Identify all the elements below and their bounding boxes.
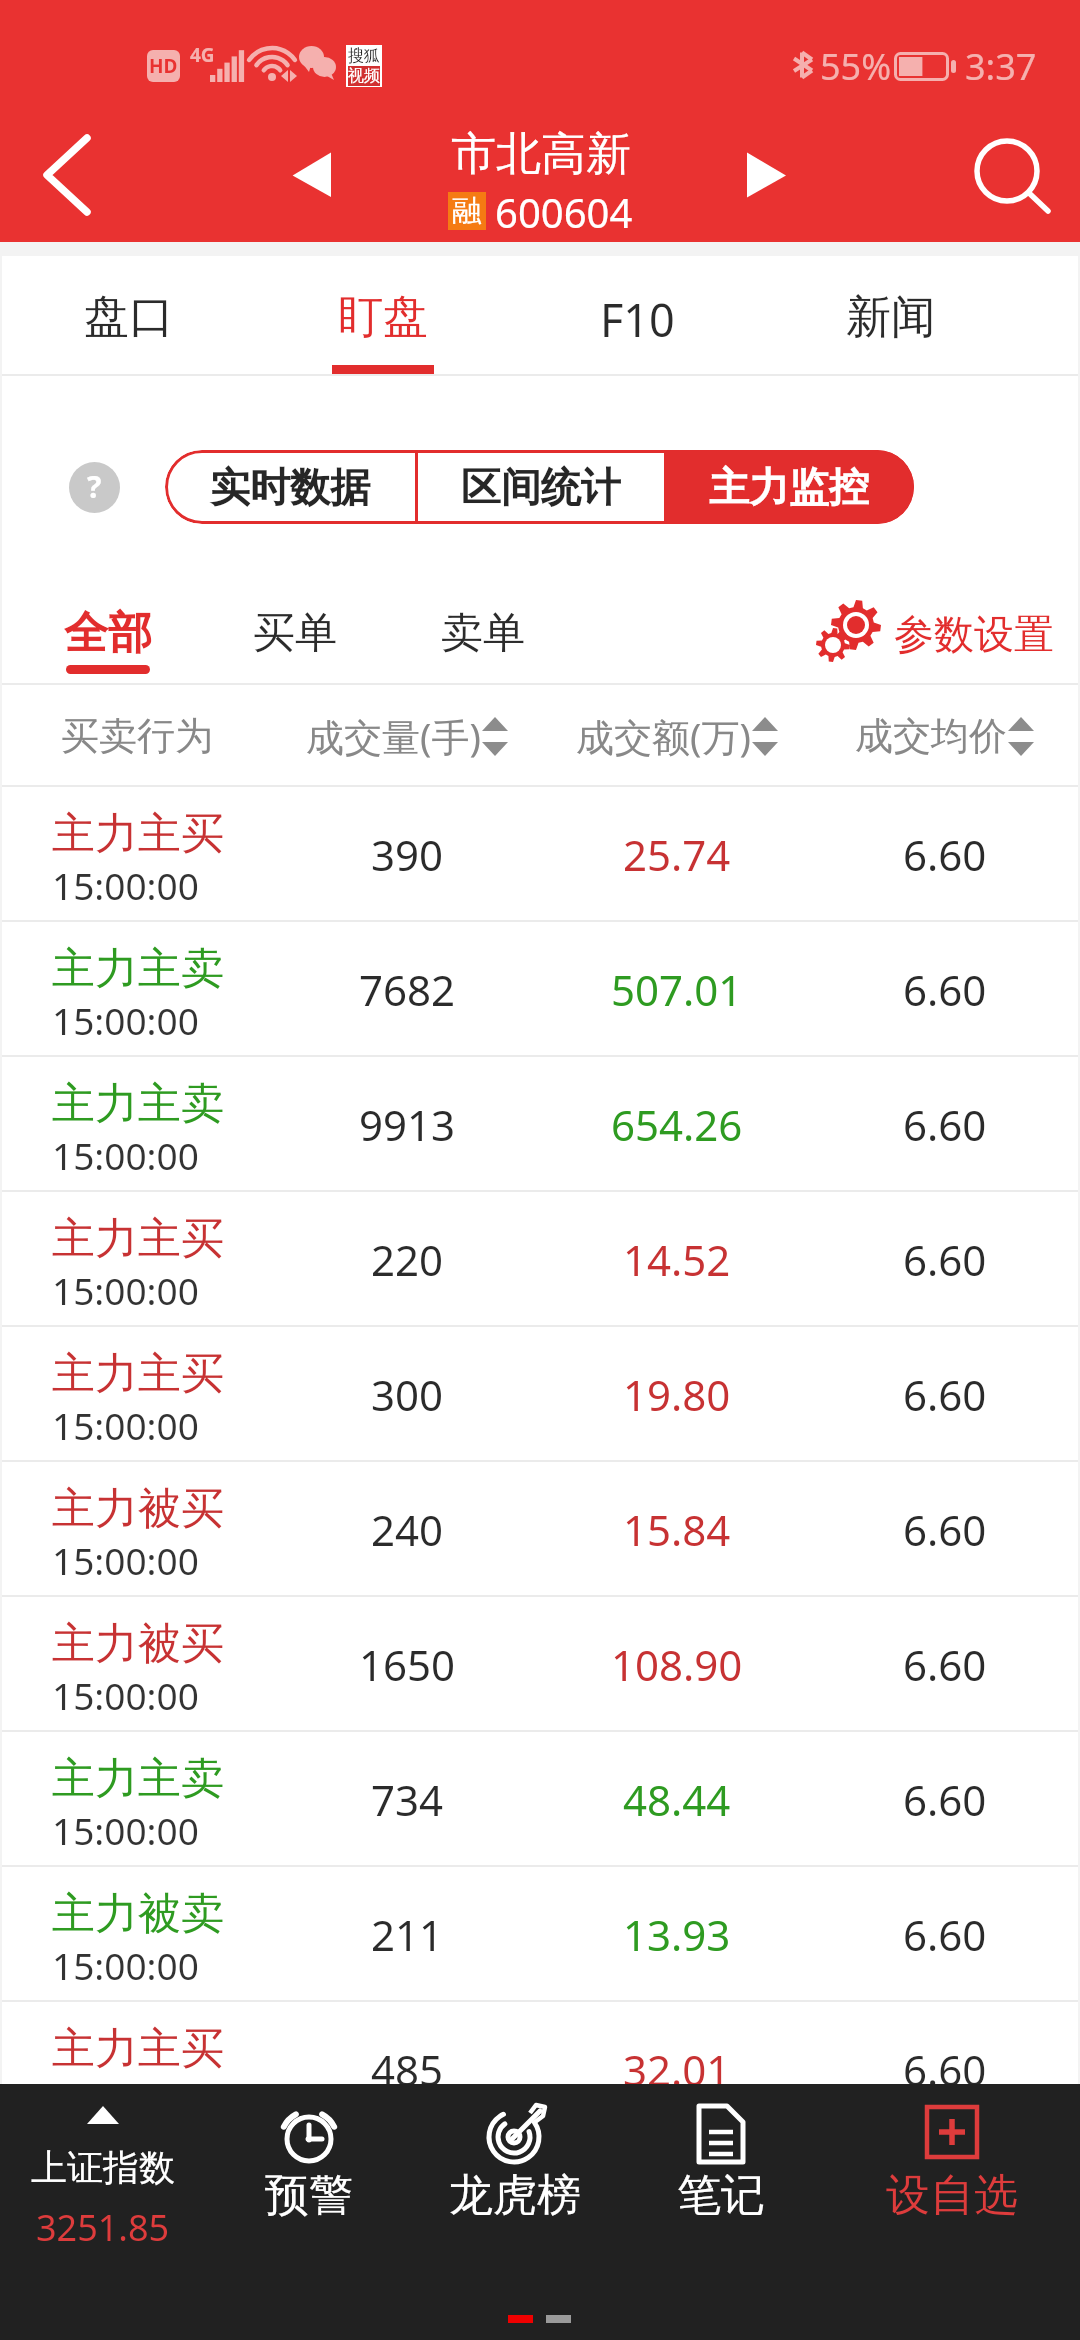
staticText: 25.74 <box>623 826 731 883</box>
button[interactable]: 全部 <box>40 580 176 684</box>
button[interactable]: 主力被买 <box>2 1462 1078 1597</box>
staticText: 主力主买 <box>52 1347 224 1401</box>
staticText: 390 <box>371 826 444 883</box>
staticText: 龙虎榜 <box>449 2168 581 2223</box>
staticText: 主力主买 <box>52 1212 224 1266</box>
button[interactable]: 上证指数 <box>0 2084 206 2244</box>
staticText: 买单 <box>253 607 337 660</box>
button[interactable]: Rankings <box>412 2084 618 2244</box>
staticText: 15:00:00 <box>52 860 199 910</box>
staticText: 6.60 <box>903 1636 987 1693</box>
button[interactable]: 成交均价 <box>812 685 1078 787</box>
staticText: 32.01 <box>623 2041 731 2098</box>
button[interactable]: Alerts <box>206 2084 412 2244</box>
staticText: HD <box>149 53 178 79</box>
button[interactable]: 主力主买 <box>2 2002 1078 2137</box>
staticText: 区间统计 <box>461 462 621 512</box>
button[interactable]: 卖单 <box>418 580 548 684</box>
staticText: 211 <box>371 1906 444 1963</box>
staticText: 视频 <box>348 66 380 86</box>
staticText: 485 <box>371 2041 444 2098</box>
button[interactable]: F10 <box>510 256 764 376</box>
staticText: 主力主卖 <box>52 942 224 996</box>
button[interactable]: 主力监控 <box>664 450 914 524</box>
staticText: 成交均价 <box>855 712 1007 760</box>
staticText: 15:00:00 <box>52 1400 199 1450</box>
staticText: 主力被买 <box>52 1482 224 1536</box>
button[interactable]: Next stock <box>727 142 807 208</box>
staticText: 108.90 <box>611 1636 743 1693</box>
button[interactable]: 盯盘 <box>256 256 510 376</box>
button[interactable]: 设自选 <box>824 2084 1080 2244</box>
staticText: 预警 <box>265 2168 353 2223</box>
button[interactable]: 实时数据 <box>165 450 415 524</box>
button[interactable]: Help <box>69 462 120 513</box>
button[interactable]: 主力主买 <box>2 1192 1078 1327</box>
button[interactable]: 成交量(手) <box>272 685 542 787</box>
staticText: 主力被卖 <box>52 1887 224 1941</box>
staticText: 15:00:00 <box>52 2075 199 2125</box>
staticText: 6.60 <box>903 2041 987 2098</box>
button[interactable]: 主力主卖 <box>2 1057 1078 1192</box>
staticText: 主力监控 <box>709 462 869 512</box>
button[interactable]: 买单 <box>230 580 360 684</box>
staticText: 参数设置 <box>894 609 1054 659</box>
button[interactable]: 主力主买 <box>2 1327 1078 1462</box>
button[interactable]: Previous stock <box>272 142 352 208</box>
staticText: 搜狐 <box>348 46 380 66</box>
staticText: 主力被买 <box>52 1617 224 1671</box>
staticText: 15:00:00 <box>52 1535 199 1585</box>
staticText: 6.60 <box>903 961 987 1018</box>
staticText: 14.52 <box>623 1231 731 1288</box>
staticText: 融 <box>452 192 482 230</box>
staticText: 15.84 <box>623 1501 731 1558</box>
staticText: 买卖行为 <box>61 712 213 760</box>
staticText: 6.60 <box>903 1501 987 1558</box>
staticText: 6.60 <box>903 826 987 883</box>
button[interactable]: 主力被卖 <box>2 1867 1078 2002</box>
button[interactable]: 主力主卖 <box>2 1732 1078 1867</box>
staticText: 15:00:00 <box>52 1805 199 1855</box>
button[interactable]: 主力主买 <box>2 787 1078 922</box>
button[interactable]: 主力主卖 <box>2 922 1078 1057</box>
button[interactable]: Notes <box>618 2084 824 2244</box>
staticText: 734 <box>371 1771 444 1828</box>
staticText: 实时数据 <box>210 462 370 512</box>
staticText: 主力主买 <box>52 807 224 861</box>
staticText: 15:00:00 <box>52 1130 199 1180</box>
staticText: 220 <box>371 1231 444 1288</box>
staticText: 笔记 <box>677 2168 765 2223</box>
button[interactable]: 成交额(万) <box>542 685 812 787</box>
staticText: 654.26 <box>611 1096 743 1153</box>
button[interactable]: 主力被买 <box>2 1597 1078 1732</box>
staticText: 主力主卖 <box>52 1752 224 1806</box>
staticText: 55% <box>820 42 892 91</box>
button[interactable]: Search <box>955 120 1065 230</box>
button[interactable]: 新闻 <box>764 256 1018 376</box>
staticText: 6.60 <box>903 1906 987 1963</box>
staticText: 15:00:00 <box>52 1265 199 1315</box>
staticText: 主力主卖 <box>52 1077 224 1131</box>
staticText: 6.60 <box>903 1771 987 1828</box>
staticText: 市北高新 <box>451 126 631 183</box>
staticText: 19.80 <box>623 1366 731 1423</box>
button[interactable]: 盘口 <box>2 256 256 376</box>
staticText: 6.60 <box>903 1366 987 1423</box>
staticText: 9913 <box>359 1096 456 1153</box>
staticText: 3:37 <box>965 42 1037 91</box>
button[interactable]: 参数设置 <box>816 592 1054 672</box>
staticText: F10 <box>600 289 675 350</box>
button[interactable]: 区间统计 <box>418 450 664 524</box>
staticText: 4G <box>190 42 215 68</box>
staticText: 设自选 <box>886 2168 1018 2223</box>
staticText: 6.60 <box>903 1231 987 1288</box>
staticText: 卖单 <box>441 607 525 660</box>
staticText: 盯盘 <box>338 289 428 346</box>
staticText: 全部 <box>64 606 152 661</box>
staticText: 盘口 <box>84 289 174 346</box>
button[interactable]: Back <box>12 130 112 220</box>
staticText: 新闻 <box>846 289 936 346</box>
staticText: 300 <box>371 1366 444 1423</box>
staticText: 上证指数 <box>31 2145 175 2190</box>
staticText: 3251.85 <box>36 2203 170 2252</box>
